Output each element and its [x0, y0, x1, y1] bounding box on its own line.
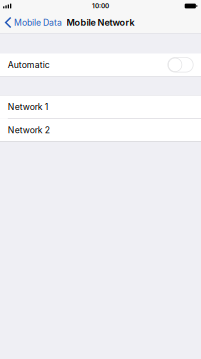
staticText: Network 2 [8, 125, 50, 135]
button[interactable]: Mobile Data [0, 13, 66, 32]
staticText: Mobile Data [14, 17, 62, 28]
staticText: Automatic [8, 60, 50, 70]
button[interactable]: Network 1 [0, 95, 201, 118]
button[interactable]: Automatic [0, 53, 201, 76]
staticText: Network 1 [8, 102, 49, 112]
button[interactable]: Network 2 [0, 119, 201, 141]
staticText: 10:00 [92, 2, 109, 10]
staticText: Mobile Network [66, 17, 134, 28]
